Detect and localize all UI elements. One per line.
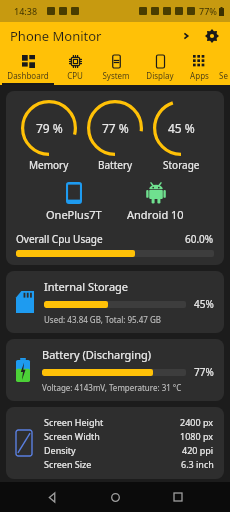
staticText: 79 % (36, 120, 63, 136)
staticText: Battery (98, 158, 133, 172)
staticText: 420 ppi (182, 444, 214, 456)
staticText: Used: 43.84 GB, Total: 95.47 GB (44, 314, 161, 325)
button[interactable]: Se (216, 50, 230, 85)
staticText: Screen Size (44, 458, 92, 470)
button[interactable]: Home (103, 485, 127, 509)
staticText: Apps (190, 70, 209, 81)
staticText: 45 % (168, 120, 195, 136)
staticText: Phone Monitor (10, 27, 102, 45)
button[interactable]: Screen Height (6, 407, 224, 479)
button[interactable]: Internal Storage (6, 271, 224, 333)
staticText: CPU (67, 70, 83, 81)
staticText: 6.3 inch (181, 458, 214, 470)
button[interactable]: More (176, 26, 196, 46)
staticText: OnePlus7T (46, 207, 102, 222)
staticText: Display (146, 70, 174, 81)
button[interactable]: Android 10 (127, 182, 184, 222)
button[interactable]: System (94, 50, 138, 85)
button[interactable]: Battery (Discharging) (6, 339, 224, 401)
staticText: 14:38 (14, 5, 38, 17)
staticText: Android 10 (127, 207, 184, 222)
staticText: Screen Width (44, 430, 100, 442)
staticText: 2400 px (180, 416, 214, 428)
staticText: Internal Storage (44, 279, 129, 294)
staticText: 77% (199, 5, 217, 17)
staticText: 60.0% (185, 232, 214, 246)
staticText: 77 % (102, 120, 129, 136)
button[interactable]: Recents (166, 485, 190, 509)
button[interactable]: Settings (201, 25, 223, 47)
button[interactable]: Apps (182, 50, 216, 85)
button[interactable]: Display (138, 50, 182, 85)
staticText: Dashboard (7, 70, 49, 81)
staticText: System (102, 70, 130, 81)
staticText: 45% (194, 297, 214, 311)
staticText: Density (44, 444, 76, 456)
staticText: Storage (163, 158, 200, 172)
button[interactable]: Back (40, 485, 64, 509)
button[interactable]: Dashboard (0, 50, 56, 85)
staticText: 1080 px (180, 430, 214, 442)
button[interactable]: OnePlus7T (46, 182, 102, 222)
staticText: Overall Cpu Usage (16, 232, 103, 246)
staticText: Voltage: 4143mV, Temperature: 31 °C (42, 382, 182, 393)
staticText: Battery (Discharging) (42, 347, 152, 362)
staticText: 77% (194, 365, 214, 379)
button[interactable]: CPU (56, 50, 94, 85)
staticText: Memory (29, 158, 69, 172)
staticText: Screen Height (44, 416, 104, 428)
staticText: Se (219, 70, 228, 81)
